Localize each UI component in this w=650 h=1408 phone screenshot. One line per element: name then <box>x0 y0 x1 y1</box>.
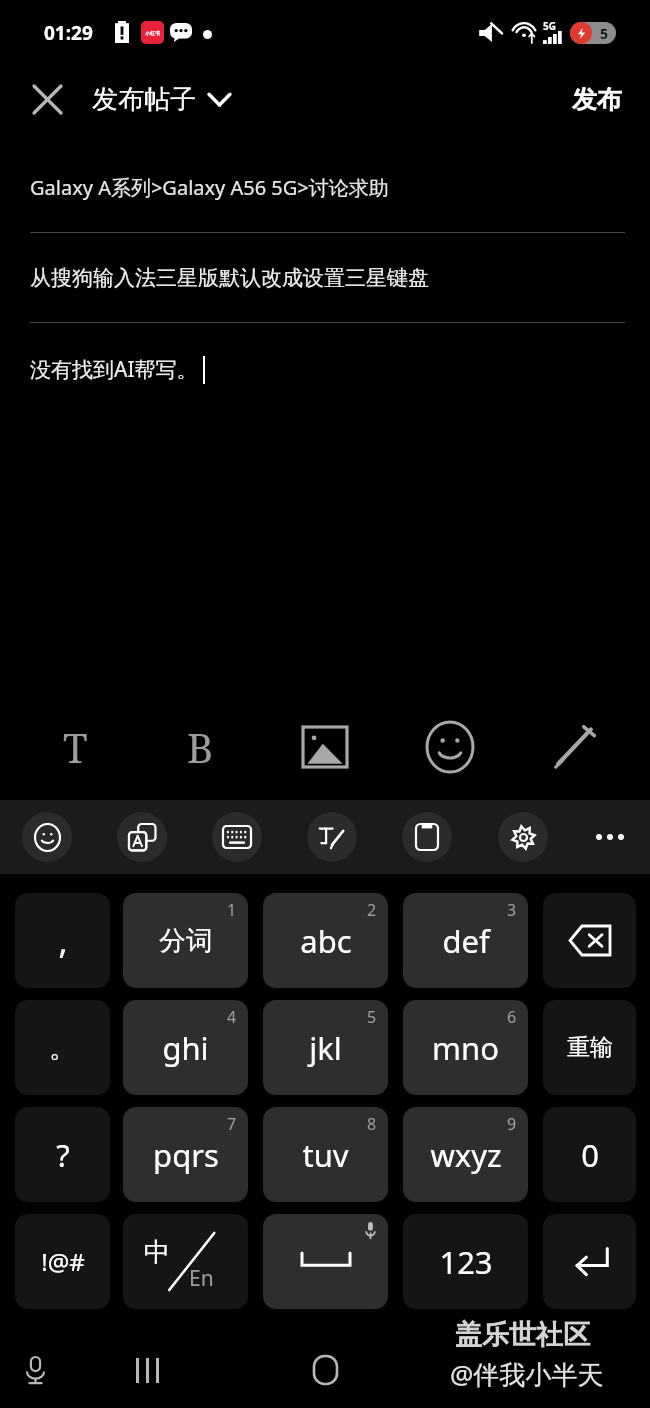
button[interactable]: tuv <box>263 1107 388 1202</box>
button[interactable]: Enter <box>543 1214 636 1309</box>
button[interactable]: 发布帖子 <box>92 66 230 132</box>
staticText: mno <box>432 1027 499 1069</box>
button[interactable]: mno <box>403 1000 528 1095</box>
button[interactable]: , <box>15 893 110 988</box>
staticText: ? <box>56 1134 70 1176</box>
button[interactable]: 。 <box>15 1000 110 1095</box>
button[interactable]: Home <box>295 1340 355 1400</box>
staticText: B <box>187 720 214 774</box>
staticText: 发布 <box>572 84 622 115</box>
staticText: 没有找到AI帮写。 <box>30 355 198 384</box>
staticText: , <box>58 918 68 964</box>
staticText: 9 <box>507 1113 517 1135</box>
staticText: 5 <box>367 1006 377 1028</box>
button[interactable]: Emoji <box>414 707 486 787</box>
button[interactable]: 123 <box>403 1214 528 1309</box>
button[interactable]: Recents <box>117 1340 177 1400</box>
staticText: wxyz <box>430 1134 502 1176</box>
button[interactable]: abc <box>263 893 388 988</box>
button[interactable]: Close <box>18 66 76 132</box>
button[interactable]: Handwriting <box>307 812 357 862</box>
button[interactable]: ? <box>15 1107 110 1202</box>
button[interactable]: 分词 <box>123 893 248 988</box>
button[interactable]: Backspace <box>543 893 636 988</box>
staticText: T <box>63 720 88 774</box>
staticText: 3 <box>507 899 517 921</box>
staticText: pqrs <box>153 1134 219 1176</box>
button[interactable]: wxyz <box>403 1107 528 1202</box>
staticText: 123 <box>439 1241 493 1283</box>
staticText: 8 <box>367 1113 377 1135</box>
staticText: 0 <box>581 1134 599 1176</box>
staticText: @伴我小半天 <box>450 1356 604 1392</box>
staticText: 小红书 <box>145 30 160 36</box>
staticText: En <box>189 1264 214 1293</box>
button[interactable]: Keyboard layout <box>212 812 262 862</box>
button[interactable]: Settings <box>498 812 548 862</box>
button[interactable]: Space <box>263 1214 388 1309</box>
staticText: !@# <box>41 1245 85 1278</box>
button[interactable]: ghi <box>123 1000 248 1095</box>
button[interactable]: 0 <box>543 1107 636 1202</box>
button[interactable]: Emoji <box>22 812 72 862</box>
staticText: tuv <box>302 1134 349 1176</box>
staticText: Galaxy A系列>Galaxy A56 5G>讨论求助 <box>30 174 389 201</box>
button[interactable]: Draw <box>539 707 611 787</box>
staticText: 。 <box>49 1031 76 1065</box>
button[interactable]: Bold <box>164 707 236 787</box>
staticText: abc <box>300 920 352 962</box>
button[interactable]: Text style <box>39 707 111 787</box>
staticText: 4 <box>227 1006 237 1028</box>
staticText: 中 <box>144 1236 170 1269</box>
staticText: jkl <box>309 1027 342 1069</box>
button[interactable]: Translate <box>117 812 167 862</box>
staticText: def <box>442 920 490 962</box>
button[interactable]: More options <box>585 812 635 862</box>
staticText: 发布帖子 <box>92 83 196 116</box>
button[interactable]: 重输 <box>543 1000 636 1095</box>
button[interactable]: def <box>403 893 528 988</box>
staticText: 2 <box>367 899 377 921</box>
button[interactable]: Insert image <box>289 707 361 787</box>
staticText: 7 <box>227 1113 237 1135</box>
staticText: 5 <box>600 24 609 43</box>
staticText: 从搜狗输入法三星版默认改成设置三星键盘 <box>30 265 429 291</box>
staticText: 重输 <box>567 1033 613 1062</box>
button[interactable]: Voice input <box>5 1340 65 1400</box>
staticText: 1 <box>227 899 237 921</box>
button[interactable]: 发布 <box>558 66 636 132</box>
staticText: 01:29 <box>44 20 93 46</box>
staticText: 分词 <box>159 924 213 958</box>
staticText: 5G <box>543 19 556 33</box>
staticText: 6 <box>507 1006 517 1028</box>
staticText: 盖乐世社区 <box>455 1318 590 1352</box>
button[interactable]: Switch Chinese English <box>123 1214 248 1309</box>
button[interactable]: pqrs <box>123 1107 248 1202</box>
button[interactable]: !@# <box>15 1214 110 1309</box>
button[interactable]: jkl <box>263 1000 388 1095</box>
button[interactable]: Clipboard <box>402 812 452 862</box>
staticText: ghi <box>162 1027 209 1069</box>
